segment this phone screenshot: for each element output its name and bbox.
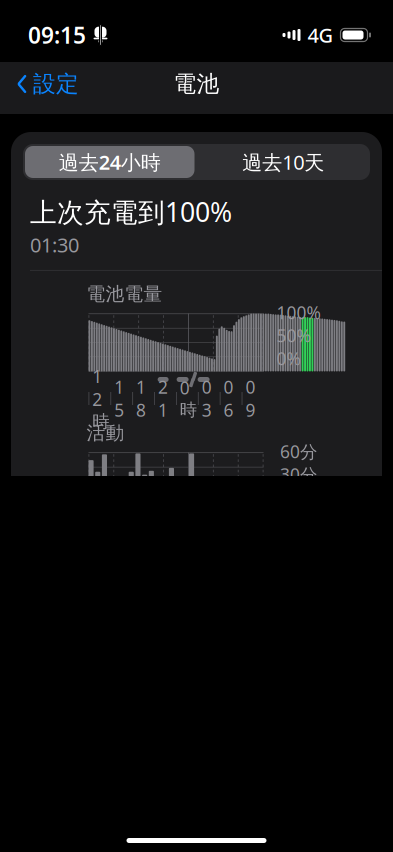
staticText: 60分 bbox=[280, 440, 317, 463]
staticText: 過去24小時 bbox=[59, 149, 161, 175]
staticText: 4G bbox=[307, 22, 333, 48]
staticText: 過去10天 bbox=[242, 149, 324, 175]
staticText: 顯示每個App使用的電池比例。 bbox=[30, 842, 292, 852]
staticText: 設定 bbox=[33, 70, 79, 98]
button[interactable]: 設定 bbox=[8, 62, 79, 106]
staticText: 電池電量 bbox=[86, 283, 162, 305]
staticText: 50% bbox=[276, 324, 310, 347]
button[interactable]: 過去10天 bbox=[196, 144, 370, 180]
staticText: 100% bbox=[276, 301, 320, 324]
staticText: 09 bbox=[245, 375, 255, 421]
staticText: 0% bbox=[276, 347, 300, 370]
staticText: 06 bbox=[224, 375, 234, 421]
staticText: 21 bbox=[158, 375, 168, 421]
staticText: 18 bbox=[136, 375, 146, 421]
staticText: 0時 bbox=[180, 376, 197, 421]
staticText: 15 bbox=[114, 375, 124, 421]
button[interactable]: 過去24小時 bbox=[23, 144, 196, 180]
staticText: 電池 bbox=[173, 70, 219, 98]
staticText: 01:30 bbox=[30, 231, 79, 258]
staticText: 09:15 bbox=[28, 20, 86, 50]
staticText: 上次充電到100% bbox=[30, 194, 232, 229]
staticText: 活動 bbox=[86, 421, 124, 444]
staticText: 03 bbox=[202, 375, 212, 421]
staticText: 30分 bbox=[280, 463, 317, 486]
staticText: 12時 bbox=[92, 365, 109, 432]
